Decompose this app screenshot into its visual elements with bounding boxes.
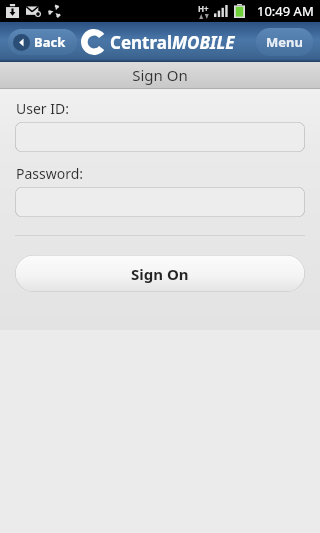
- staticText: Back: [34, 33, 66, 51]
- staticText: Sign On: [131, 264, 189, 284]
- staticText: H+: [198, 3, 209, 14]
- staticText: Menu: [266, 33, 303, 51]
- button[interactable]: Back: [8, 29, 77, 55]
- staticText: Sign On: [132, 65, 188, 85]
- staticText: Password:: [16, 164, 84, 183]
- button[interactable]: Menu: [256, 28, 313, 56]
- staticText: 10:49 AM: [257, 2, 314, 20]
- button[interactable]: [15, 122, 305, 152]
- button[interactable]: [15, 187, 305, 217]
- staticText: User ID:: [16, 99, 69, 118]
- staticText: MOBILE: [172, 31, 235, 54]
- staticText: Central: [110, 31, 172, 54]
- button[interactable]: Sign On: [15, 255, 305, 292]
